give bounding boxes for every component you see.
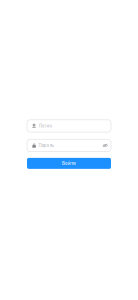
button[interactable]: Пароль bbox=[27, 139, 111, 152]
staticText: Логин bbox=[39, 123, 53, 129]
staticText: Войти bbox=[62, 161, 76, 166]
button[interactable]: Войти bbox=[27, 158, 111, 169]
button[interactable]: Логин bbox=[27, 120, 111, 132]
staticText: Пароль bbox=[39, 143, 54, 148]
